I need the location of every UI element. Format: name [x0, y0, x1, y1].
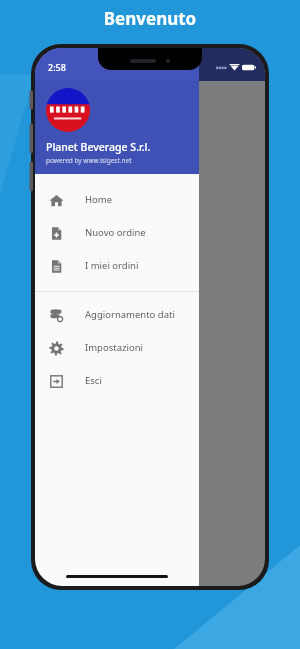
staticText: Impostazioni [85, 341, 143, 354]
other: Esci [49, 374, 64, 389]
button[interactable]: I miei ordini [35, 249, 199, 282]
staticText: Aggiornamento dati [85, 308, 175, 321]
other: Home [49, 193, 64, 208]
button[interactable]: Aggiornamento dati [35, 298, 199, 331]
other: Impostazioni [49, 341, 64, 356]
button[interactable]: Esci [35, 364, 199, 397]
staticText: Home [85, 193, 113, 206]
staticText: powered by www.isigest.net [46, 156, 132, 165]
staticText: 2:58 [48, 61, 66, 73]
staticText: Nuovo ordine [85, 226, 146, 239]
button[interactable]: Planet Beverage S.r.l. [35, 48, 199, 174]
other: Aggiornamento dati [49, 308, 64, 323]
staticText: I miei ordini [85, 259, 139, 272]
button[interactable]: Nuovo ordine [35, 216, 199, 249]
button[interactable] [199, 48, 265, 586]
button[interactable]: Home [35, 183, 199, 216]
staticText: Planet Beverage S.r.l. [46, 140, 151, 154]
other: I miei ordini [49, 259, 64, 274]
staticText: Esci [85, 374, 102, 387]
other: Nuovo ordine [49, 226, 64, 241]
staticText: Benvenuto [0, 7, 300, 30]
button[interactable]: Impostazioni [35, 331, 199, 364]
